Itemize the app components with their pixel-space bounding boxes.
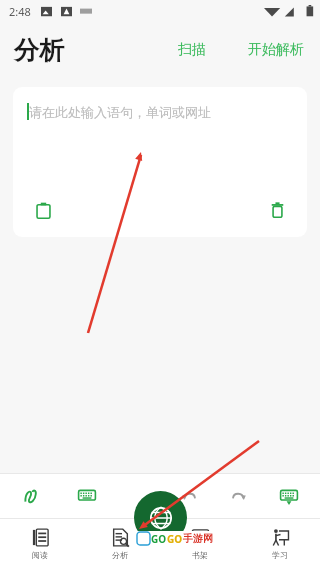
staticText: 手游网 xyxy=(183,532,213,545)
button[interactable]: Undo xyxy=(174,481,204,511)
button[interactable]: 开始解析 xyxy=(242,35,310,65)
button[interactable]: Paste from clipboard xyxy=(30,197,56,223)
button[interactable]: Handwriting input xyxy=(16,481,46,511)
button[interactable]: Hide keyboard xyxy=(274,481,304,511)
staticText: GO xyxy=(151,532,167,546)
button[interactable]: 书架 xyxy=(160,518,240,568)
button[interactable]: 请在此处输入语句，单词或网址 xyxy=(13,87,307,237)
button[interactable]: Translate web page xyxy=(134,491,187,544)
button[interactable]: 扫描 xyxy=(168,35,216,65)
staticText: 分析 xyxy=(14,35,64,66)
staticText: 书架 xyxy=(192,550,208,560)
staticText: 学习 xyxy=(272,550,288,560)
staticText: 阅读 xyxy=(32,550,48,560)
staticText: 2:48 xyxy=(9,4,31,19)
button[interactable]: Clear text xyxy=(264,197,290,223)
staticText: 分析 xyxy=(112,550,128,560)
staticText: 请在此处输入语句，单词或网址 xyxy=(29,104,211,120)
button[interactable]: Redo xyxy=(224,481,254,511)
staticText: GO xyxy=(167,532,183,546)
button[interactable]: 学习 xyxy=(240,518,320,568)
staticText: 开始解析 xyxy=(248,41,304,59)
button[interactable]: Keyboard xyxy=(72,481,102,511)
button[interactable]: 阅读 xyxy=(0,518,80,568)
button[interactable]: 分析 xyxy=(80,518,160,568)
staticText: 扫描 xyxy=(178,41,206,59)
